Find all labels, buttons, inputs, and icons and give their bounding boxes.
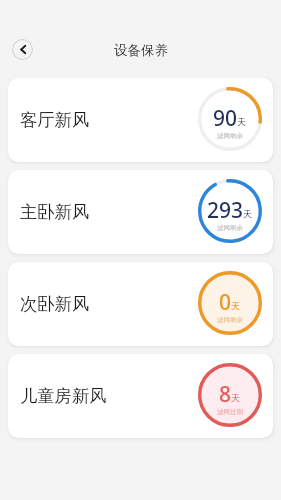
staticText: 天 xyxy=(237,116,246,127)
staticText: 90 xyxy=(213,104,238,133)
staticText: 天 xyxy=(231,300,240,311)
staticText: 儿童房新风 xyxy=(20,385,107,407)
staticText: 主卧新风 xyxy=(20,201,90,223)
staticText: 天 xyxy=(231,392,240,403)
button[interactable]: 儿童房新风 xyxy=(8,354,273,438)
staticText: 滤网剩余 xyxy=(217,224,243,232)
button[interactable]: Back xyxy=(12,39,33,60)
staticText: 0 xyxy=(219,288,232,317)
staticText: 次卧新风 xyxy=(20,293,90,315)
staticText: 8 xyxy=(219,380,232,409)
button[interactable]: 主卧新风 xyxy=(8,170,273,254)
staticText: 天 xyxy=(243,208,252,219)
staticText: 滤网过期 xyxy=(217,408,243,416)
button[interactable]: 客厅新风 xyxy=(8,78,273,162)
staticText: 客厅新风 xyxy=(20,109,90,131)
button[interactable]: 次卧新风 xyxy=(8,262,273,346)
staticText: 滤网剩余 xyxy=(217,132,243,140)
staticText: 293 xyxy=(207,196,244,225)
staticText: 滤网剩余 xyxy=(217,316,243,324)
staticText: 设备保养 xyxy=(114,42,168,59)
